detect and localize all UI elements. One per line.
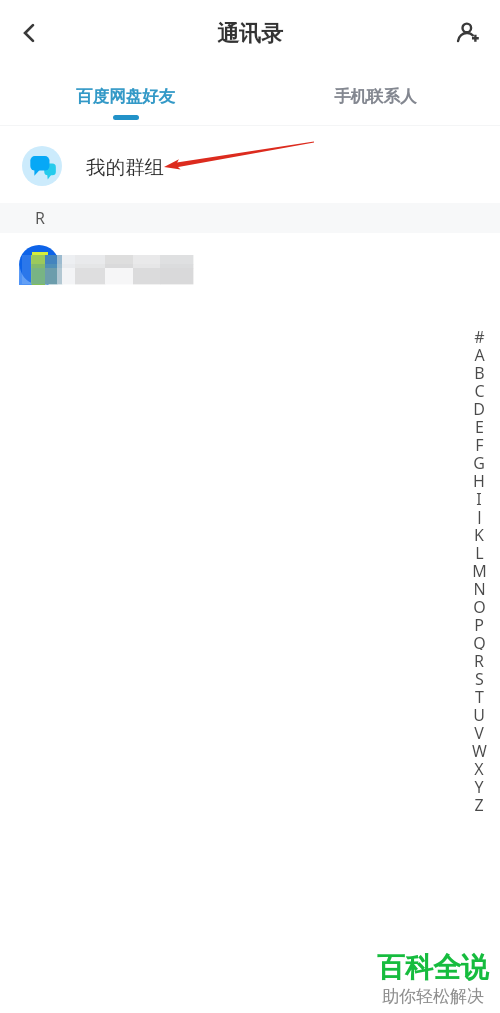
staticText: Q (473, 632, 486, 650)
staticText: B (474, 362, 485, 380)
button[interactable]: Back (5, 10, 51, 56)
button[interactable]: Add contact (447, 11, 491, 55)
staticText: C (474, 380, 485, 398)
staticText: U (473, 704, 485, 722)
staticText: 手机联系人 (334, 86, 417, 107)
staticText: K (474, 524, 484, 542)
staticText: T (475, 686, 484, 704)
staticText: R (35, 207, 45, 229)
staticText: S (475, 668, 484, 686)
button[interactable] (0, 233, 500, 299)
staticText: I (476, 488, 482, 506)
staticText: D (473, 398, 485, 416)
staticText: X (474, 758, 484, 776)
staticText: Y (474, 776, 484, 794)
staticText: G (473, 452, 485, 470)
staticText: 通讯录 (217, 20, 283, 48)
staticText: 我的群组 (86, 155, 164, 180)
button[interactable]: Alphabet index (469, 326, 489, 812)
staticText: V (474, 722, 484, 740)
staticText: H (473, 470, 485, 488)
staticText: N (473, 578, 486, 596)
button[interactable]: 百度网盘好友 (0, 66, 250, 126)
staticText: M (472, 560, 487, 578)
staticText: # (474, 326, 485, 344)
staticText: E (475, 416, 484, 434)
staticText: Z (474, 794, 484, 812)
staticText: 百科全说 (377, 950, 489, 985)
staticText: L (475, 542, 484, 560)
button[interactable]: 手机联系人 (250, 66, 500, 126)
staticText: A (474, 344, 485, 362)
button[interactable]: 我的群组 (0, 126, 500, 203)
staticText: R (474, 650, 484, 668)
staticText: J (477, 506, 482, 524)
staticText: P (474, 614, 484, 632)
staticText: 助你轻松解决 (382, 986, 484, 1007)
staticText: 百度网盘好友 (76, 86, 175, 107)
staticText: W (472, 740, 487, 758)
staticText: O (473, 596, 486, 614)
staticText: F (475, 434, 484, 452)
